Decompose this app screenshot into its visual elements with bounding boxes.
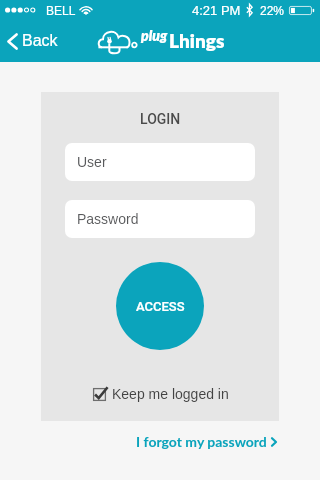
staticText: User (77, 154, 107, 170)
staticText: LOGIN (140, 111, 181, 127)
staticText: plug (141, 27, 168, 44)
button[interactable]: ACCESS (116, 262, 204, 350)
button[interactable]: Back (0, 28, 68, 54)
button[interactable]: I forgot my password (132, 429, 281, 454)
staticText: Back (22, 32, 58, 50)
staticText: 4:21 PM (192, 3, 241, 18)
staticText: Password (77, 211, 139, 227)
staticText: 22% (260, 4, 285, 17)
other: Lhings logo (98, 31, 139, 54)
staticText: ACCESS (136, 299, 185, 314)
staticText: Lhings (169, 29, 225, 52)
staticText: BELL (46, 4, 76, 17)
button[interactable]: User (65, 143, 255, 181)
button[interactable]: Keep me logged in (90, 383, 232, 405)
button[interactable]: Password (65, 200, 255, 238)
staticText: I forgot my password (136, 433, 267, 450)
staticText: Keep me logged in (112, 386, 229, 402)
